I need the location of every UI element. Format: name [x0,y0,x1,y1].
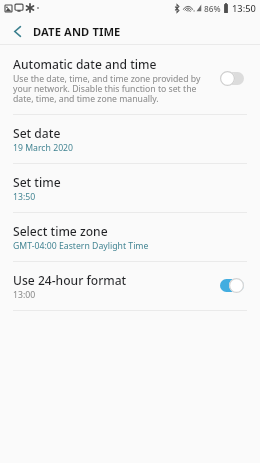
staticText: Use 24-hour format [13,270,127,289]
button[interactable]: Switch on [220,278,244,293]
button[interactable]: Switch off [220,71,244,86]
staticText: Automatic date and time [13,54,157,73]
staticText: Set time [13,172,61,191]
staticText: 19 March 2020 [13,142,74,154]
button[interactable]: Set time [0,164,260,212]
staticText: Set date [13,123,61,142]
staticText: 13:00 [13,289,36,301]
staticText: GMT-04:00 Eastern Daylight Time [13,240,149,252]
button[interactable]: Automatic date and time [0,45,260,114]
staticText: 13:50 [232,2,256,15]
button[interactable]: Set date [0,115,260,163]
staticText: 86% [204,3,221,14]
button[interactable]: Use 24-hour format [0,262,260,310]
staticText: Select time zone [13,221,108,240]
staticText: Use the date, time, and time zone provid… [13,73,214,105]
button[interactable]: Select time zone [0,213,260,261]
staticText: DATE AND TIME [33,24,121,39]
staticText: 13:50 [13,191,36,203]
button[interactable]: Navigate up [0,16,32,44]
